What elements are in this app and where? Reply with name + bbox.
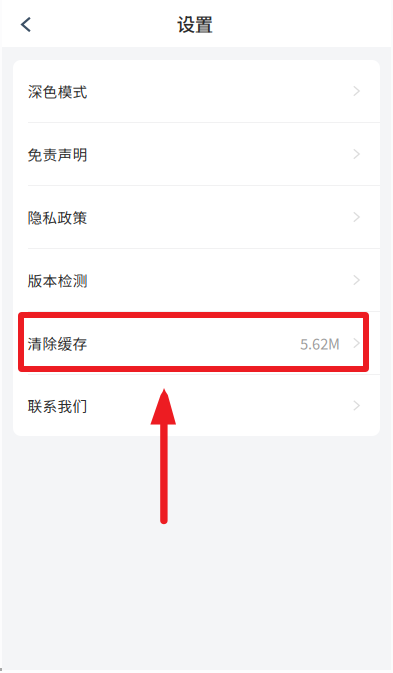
staticText: 深色模式 xyxy=(27,80,87,102)
staticText: 设置 xyxy=(177,10,213,37)
button[interactable]: Back xyxy=(0,6,45,41)
button[interactable]: 版本检测 xyxy=(13,249,380,312)
staticText: 隐私政策 xyxy=(27,206,87,228)
staticText: 清除缓存 xyxy=(27,332,87,354)
button[interactable]: 联系我们 xyxy=(13,375,380,436)
button[interactable]: 免责声明 xyxy=(13,123,380,186)
button[interactable]: 深色模式 xyxy=(13,60,380,123)
button[interactable]: 清除缓存 xyxy=(13,312,380,375)
staticText: 联系我们 xyxy=(27,395,87,416)
staticText: 5.62M xyxy=(300,332,340,354)
button[interactable]: 隐私政策 xyxy=(13,186,380,249)
staticText: 免责声明 xyxy=(27,143,87,165)
staticText: 版本检测 xyxy=(27,269,87,291)
